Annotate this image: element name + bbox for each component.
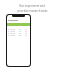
staticText: Run experiment and bbox=[19, 4, 45, 8]
button[interactable] bbox=[7, 28, 30, 30]
button[interactable] bbox=[7, 32, 30, 34]
button[interactable] bbox=[7, 34, 30, 36]
staticText: prioritise research tasks bbox=[17, 9, 48, 13]
button[interactable] bbox=[7, 30, 30, 32]
